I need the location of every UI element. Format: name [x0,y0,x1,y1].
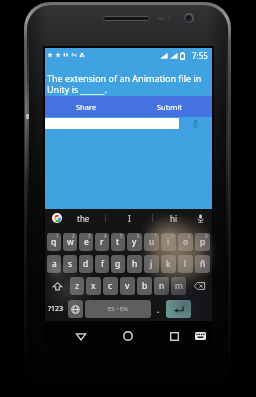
staticText: q [51,236,57,248]
staticText: g [115,258,121,270]
staticText: I [128,213,131,224]
staticText: t [116,236,120,248]
staticText: Share [76,102,97,112]
button[interactable]: Backspace [188,277,210,295]
button[interactable]: Submit [128,96,212,117]
staticText: 3 [88,233,91,239]
staticText: ES • EN [108,305,128,313]
staticText: 7:55 [192,50,208,61]
staticText: k [166,258,171,270]
button[interactable]: j [144,255,159,273]
button[interactable]: x [86,277,101,295]
button[interactable]: n [154,277,169,295]
staticText: r [100,236,104,248]
staticText: w [67,236,74,248]
button[interactable]: I [106,209,152,227]
button[interactable]: k [161,255,176,273]
staticText: e [84,236,89,248]
button[interactable]: m [171,277,186,295]
button[interactable] [52,213,62,223]
button[interactable]: Recent apps [163,325,185,347]
staticText: The extension of an Animation file in Un… [47,72,211,95]
staticText: j [150,258,153,270]
staticText: the [77,213,90,224]
button[interactable]: y [127,233,142,251]
button[interactable]: b [137,277,152,295]
staticText: ?123 [48,304,64,314]
button[interactable]: w [63,233,77,251]
staticText: o [183,236,189,248]
staticText: hi [170,213,178,224]
staticText: 5 [120,233,123,239]
button[interactable]: s [63,255,77,273]
staticText: u [149,236,155,248]
staticText: Submit [157,102,183,112]
staticText: ñ [200,258,206,270]
staticText: i [167,236,170,248]
staticText: 6 [137,233,140,239]
staticText: 2 [72,233,75,239]
button[interactable]: r [95,233,109,251]
staticText: b [142,280,148,292]
button[interactable]: t [111,233,125,251]
button[interactable]: d [79,255,93,273]
button[interactable]: p [195,233,210,251]
button[interactable]: Voice input [186,118,204,129]
staticText: d [83,258,89,270]
staticText: l [184,258,187,270]
staticText: p [200,236,206,248]
button[interactable]: ?123 [46,300,66,318]
button[interactable]: e [79,233,93,251]
button[interactable]: u [144,233,159,251]
button[interactable]: q [47,233,61,251]
button[interactable]: v [120,277,135,295]
staticText: h [132,258,138,270]
staticText: 9 [188,233,191,239]
button[interactable]: a [47,255,61,273]
staticText: y [132,236,137,248]
button[interactable]: hi [153,209,194,227]
staticText: 1 [56,233,59,239]
staticText: a [52,258,57,270]
button[interactable]: o [178,233,193,251]
staticText: 0 [205,233,208,239]
staticText: . [157,303,160,315]
staticText: 8 [171,233,174,239]
button[interactable]: g [111,255,125,273]
button[interactable]: Back [70,325,92,347]
staticText: z [75,280,79,292]
button[interactable]: c [103,277,118,295]
button[interactable]: Change language [68,300,83,318]
staticText: 4 [104,233,107,239]
button[interactable]: Hide keyboard [189,325,211,347]
button[interactable]: i [161,233,176,251]
staticText: s [68,258,73,270]
button[interactable]: Share [45,96,128,117]
staticText: m [175,280,183,292]
button[interactable]: ES • EN [85,300,151,318]
staticText: x [91,280,96,292]
staticText: f [101,258,104,270]
button[interactable]: Shift [47,277,68,295]
staticText: n [159,280,165,292]
button[interactable]: f [95,255,109,273]
button[interactable]: Home [117,325,139,347]
staticText: c [108,280,113,292]
staticText: 7 [154,233,157,239]
button[interactable]: Enter [166,300,191,318]
button[interactable]: . [153,300,164,318]
button[interactable]: ñ [195,255,210,273]
staticText: v [125,280,130,292]
button[interactable]: l [178,255,193,273]
button[interactable]: Voice input [190,209,210,227]
button[interactable]: z [70,277,84,295]
button[interactable]: the [62,209,105,227]
button[interactable]: h [127,255,142,273]
